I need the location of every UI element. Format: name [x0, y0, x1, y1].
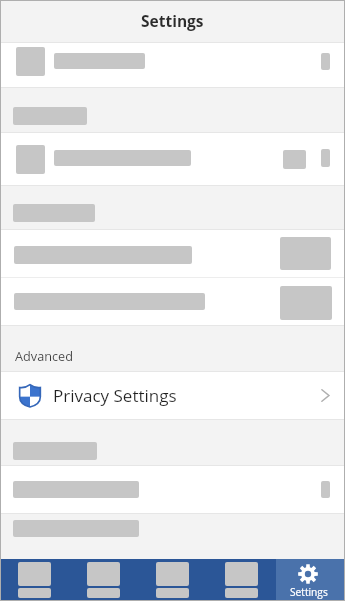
button[interactable]: Library: [138, 559, 207, 601]
staticText: Settings: [290, 585, 328, 599]
button[interactable]: Setting item: [0, 43, 345, 87]
button[interactable]: Setting item: [0, 133, 345, 185]
button[interactable]: Home: [0, 559, 69, 601]
staticText: Privacy Settings: [53, 384, 177, 407]
staticText: Advanced: [15, 347, 73, 364]
button[interactable]: Setting item: [0, 278, 345, 325]
button[interactable]: Settings title bar: [0, 0, 345, 43]
button[interactable]: Setting item: [0, 230, 345, 277]
staticText: Settings: [141, 10, 204, 31]
button[interactable]: Setting item: [0, 466, 345, 513]
button[interactable]: Notifications: [207, 559, 276, 601]
button[interactable]: Settings: [276, 559, 345, 601]
button[interactable]: Privacy Settings: [0, 372, 345, 419]
button[interactable]: Explore: [69, 559, 138, 601]
